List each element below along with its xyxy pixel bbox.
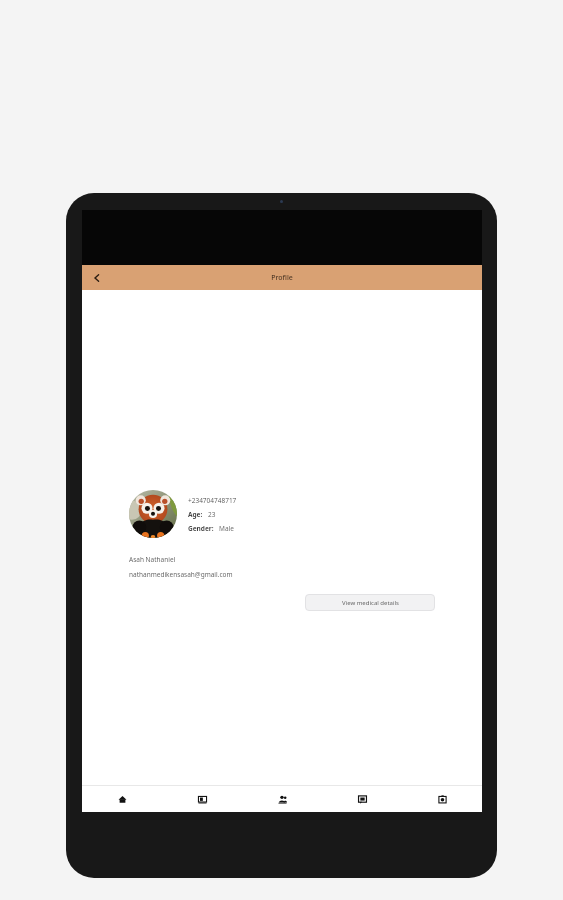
button[interactable]: Contacts bbox=[242, 786, 322, 812]
staticText: Male bbox=[219, 524, 234, 533]
button[interactable]: Camera bbox=[402, 786, 482, 812]
staticText: nathanmedikensasah@gmail.com bbox=[129, 570, 233, 579]
button[interactable]: Messages bbox=[322, 786, 402, 812]
staticText: Gender: bbox=[188, 524, 214, 533]
staticText: +234704748717 bbox=[188, 496, 237, 505]
staticText: 23 bbox=[208, 510, 216, 519]
staticText: Asah Nathaniel bbox=[129, 555, 176, 564]
button[interactable]: Profile photo bbox=[129, 490, 177, 538]
staticText: Age: bbox=[188, 510, 203, 519]
button[interactable]: Videos bbox=[162, 786, 242, 812]
button[interactable]: Back bbox=[82, 265, 112, 290]
staticText: Profile bbox=[271, 273, 293, 283]
button[interactable]: Home bbox=[82, 786, 162, 812]
button[interactable]: View medical details bbox=[305, 594, 435, 611]
staticText: View medical details bbox=[342, 599, 399, 607]
